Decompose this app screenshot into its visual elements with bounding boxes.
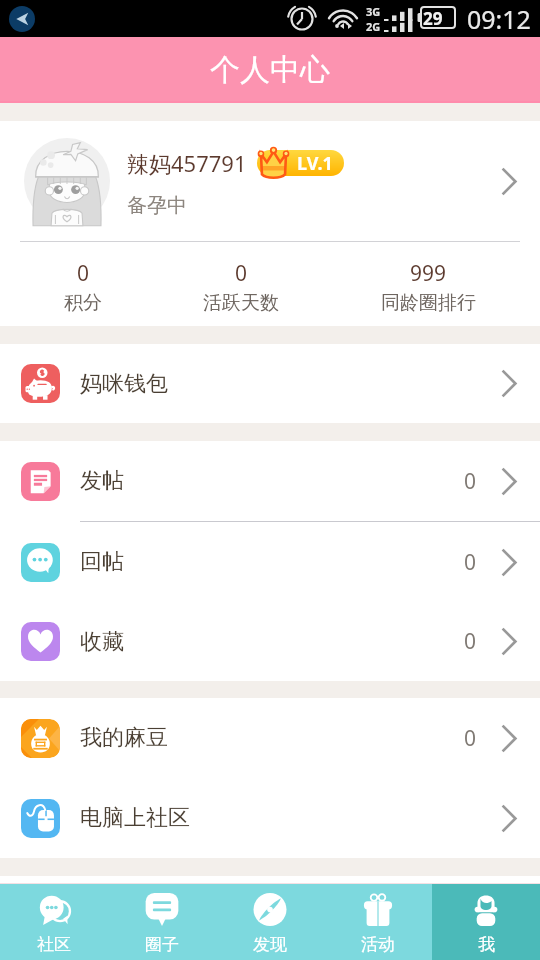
staticText: 社区	[37, 934, 71, 955]
staticText: 0	[464, 548, 477, 577]
staticText: 我	[478, 934, 495, 955]
staticText: 个人中心	[210, 51, 330, 89]
staticText: 发帖	[80, 467, 124, 495]
button[interactable]: 0	[0, 242, 166, 326]
staticText: 0	[464, 627, 477, 656]
staticText: 999	[410, 259, 447, 288]
button[interactable]: 妈咪钱包	[0, 344, 540, 423]
staticText: 活动	[361, 934, 395, 955]
button[interactable]: 0	[166, 242, 316, 326]
button[interactable]: 电脑上社区	[0, 778, 540, 858]
staticText: 0	[235, 259, 248, 288]
staticText: 电脑上社区	[80, 804, 190, 832]
staticText: 备孕中	[127, 193, 187, 218]
staticText: 积分	[64, 291, 102, 315]
staticText: 09:12	[467, 2, 531, 36]
button[interactable]: 发帖	[0, 441, 540, 521]
staticText: 2G	[366, 19, 381, 34]
button[interactable]: 圈子	[108, 884, 216, 960]
button[interactable]: 999	[316, 242, 540, 326]
staticText: 3G	[366, 4, 381, 19]
staticText: 收藏	[80, 628, 124, 656]
staticText: 发现	[253, 934, 287, 955]
button[interactable]: 发现	[216, 884, 324, 960]
staticText: 活跃天数	[203, 291, 279, 315]
staticText: 0	[464, 467, 477, 496]
button[interactable]: 回帖	[0, 522, 540, 602]
staticText: 29	[423, 7, 443, 30]
button[interactable]: 活动	[324, 884, 432, 960]
staticText: 妈咪钱包	[80, 370, 168, 398]
staticText: 回帖	[80, 548, 124, 576]
staticText: 0	[77, 259, 90, 288]
staticText: 圈子	[145, 934, 179, 955]
button[interactable]: 社区	[0, 884, 108, 960]
button[interactable]: 我	[432, 884, 540, 960]
staticText: 辣妈457791	[127, 148, 247, 178]
staticText: 0	[464, 724, 477, 753]
button[interactable]: 我的麻豆	[0, 698, 540, 778]
button[interactable]: 辣妈457791	[0, 121, 540, 241]
button[interactable]: 收藏	[0, 602, 540, 681]
staticText: LV.1	[297, 151, 333, 176]
staticText: 同龄圈排行	[381, 291, 476, 315]
staticText: 我的麻豆	[80, 724, 168, 752]
